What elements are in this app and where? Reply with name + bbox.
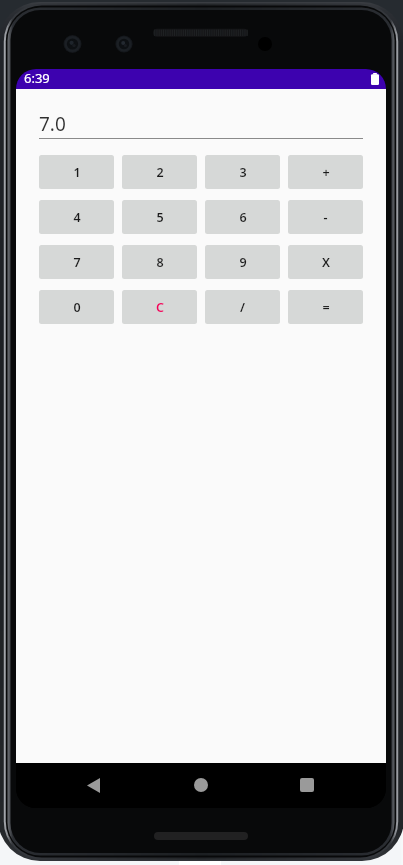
staticText: 1 (73, 164, 81, 181)
button[interactable]: = (288, 290, 363, 324)
staticText: 7.0 (39, 111, 66, 137)
staticText: 0 (73, 299, 81, 316)
button[interactable]: 5 (122, 200, 197, 234)
button[interactable]: X (288, 245, 363, 279)
staticText: 7 (73, 254, 81, 271)
button[interactable]: C (122, 290, 197, 324)
staticText: C (156, 299, 164, 316)
button[interactable]: 1 (39, 155, 114, 189)
staticText: + (322, 164, 330, 181)
button[interactable]: Recents (285, 763, 329, 807)
button[interactable]: 0 (39, 290, 114, 324)
button[interactable]: 6 (205, 200, 280, 234)
staticText: 2 (156, 164, 164, 181)
staticText: X (322, 254, 330, 271)
staticText: 6 (239, 209, 247, 226)
staticText: 8 (156, 254, 164, 271)
button[interactable]: 8 (122, 245, 197, 279)
button[interactable]: 4 (39, 200, 114, 234)
staticText: 3 (239, 164, 247, 181)
staticText: 6:39 (24, 69, 50, 87)
button[interactable]: 2 (122, 155, 197, 189)
button[interactable]: Back (71, 763, 115, 807)
staticText: / (240, 299, 245, 316)
button[interactable]: 3 (205, 155, 280, 189)
staticText: = (322, 299, 330, 316)
button[interactable]: + (288, 155, 363, 189)
button[interactable]: / (205, 290, 280, 324)
staticText: 4 (73, 209, 81, 226)
button[interactable]: 7 (39, 245, 114, 279)
staticText: - (323, 209, 328, 226)
button[interactable]: 9 (205, 245, 280, 279)
button[interactable]: - (288, 200, 363, 234)
staticText: 5 (156, 209, 164, 226)
button[interactable]: Home (179, 763, 223, 807)
staticText: 9 (239, 254, 247, 271)
